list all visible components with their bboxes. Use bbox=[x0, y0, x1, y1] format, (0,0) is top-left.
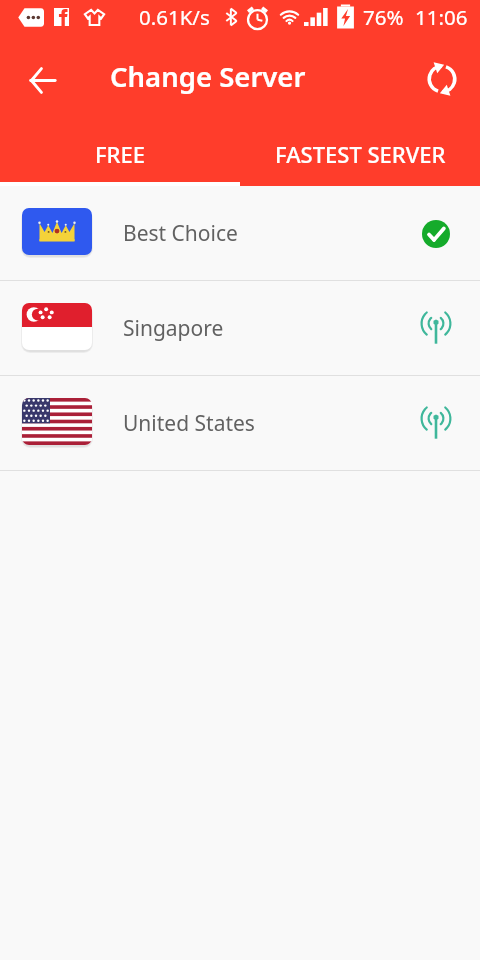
staticText: Best Choice bbox=[123, 219, 238, 248]
staticText: FASTEST SERVER bbox=[275, 139, 446, 169]
staticText: United States bbox=[123, 409, 255, 438]
button[interactable]: Singapore bbox=[0, 281, 480, 375]
staticText: Change Server bbox=[110, 58, 306, 95]
button[interactable]: Signal strength bbox=[412, 305, 460, 353]
button[interactable]: FREE bbox=[0, 130, 240, 186]
button[interactable]: Refresh bbox=[418, 55, 466, 103]
button[interactable]: Back bbox=[18, 56, 66, 104]
staticText: 11:06 bbox=[415, 3, 468, 31]
staticText: 0.61K/s bbox=[139, 3, 210, 31]
staticText: 76% bbox=[363, 3, 404, 31]
button[interactable]: United States bbox=[0, 376, 480, 470]
button[interactable]: Signal strength bbox=[412, 400, 460, 448]
button[interactable]: Best Choice bbox=[0, 186, 480, 280]
button[interactable]: FASTEST SERVER bbox=[240, 130, 480, 186]
staticText: Singapore bbox=[123, 314, 224, 343]
staticText: FREE bbox=[95, 139, 146, 169]
button[interactable]: Selected server bbox=[412, 210, 460, 258]
